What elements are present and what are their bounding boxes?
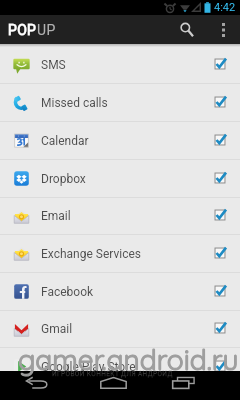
button[interactable]: Facebook (0, 273, 240, 311)
button[interactable]: Calendar (0, 122, 240, 160)
staticText: UP (37, 22, 56, 38)
button[interactable]: Gmail (0, 311, 240, 348)
button[interactable]: Recent apps (172, 377, 221, 397)
staticText: Facebook (41, 285, 94, 299)
staticText: gamer.android.ru (18, 342, 239, 377)
staticText: 4:42 (214, 1, 236, 14)
button[interactable]: Back (26, 377, 75, 397)
staticText: SMS (41, 58, 66, 72)
button[interactable]: Missed calls (0, 84, 240, 122)
staticText: Calendar (41, 134, 89, 148)
staticText: Google Play Store (41, 360, 136, 374)
staticText: Missed calls (41, 96, 108, 110)
button[interactable]: Home (100, 377, 149, 397)
button[interactable]: Email (0, 198, 240, 235)
staticText: POP (8, 22, 37, 38)
staticText: Dropbox (41, 172, 86, 186)
button[interactable]: Google Play Store (0, 348, 240, 386)
staticText: Gmail (41, 322, 73, 336)
staticText: ИГРОВОЙ КОННЕКТ ДЛЯ АНДРОИД (52, 370, 173, 378)
button[interactable]: Dropbox (0, 160, 240, 198)
staticText: gamer.android.ru (18, 342, 239, 377)
button[interactable]: More options (209, 15, 238, 44)
button[interactable]: Exchange Services (0, 235, 240, 273)
staticText: Email (41, 209, 71, 223)
staticText: Exchange Services (41, 247, 142, 261)
button[interactable]: Search (170, 15, 204, 44)
button[interactable]: SMS (0, 47, 240, 84)
